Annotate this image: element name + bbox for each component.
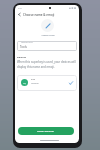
staticText: Toolbox — [31, 82, 39, 85]
button[interactable]: Change emoji — [41, 19, 54, 32]
staticText: Change emoji — [41, 34, 55, 37]
staticText: Devices — [17, 55, 27, 58]
button[interactable]: ab — [17, 75, 77, 91]
staticText: info — [31, 78, 36, 81]
button[interactable]: Create superkey — [18, 127, 74, 135]
button[interactable]: Back — [16, 11, 23, 18]
staticText: Choose name & emoji — [23, 13, 55, 17]
staticText: Create superkey — [37, 130, 55, 133]
staticText: When this superkey is used, your devices… — [17, 60, 77, 68]
staticText: ab — [23, 81, 26, 84]
staticText: Tools — [20, 45, 27, 49]
staticText: Superkey name — [21, 41, 33, 43]
button[interactable] — [17, 41, 77, 51]
staticText: 9:41 — [18, 7, 23, 10]
button[interactable]: Change emoji — [38, 34, 57, 37]
other: Selected device — [69, 81, 73, 85]
